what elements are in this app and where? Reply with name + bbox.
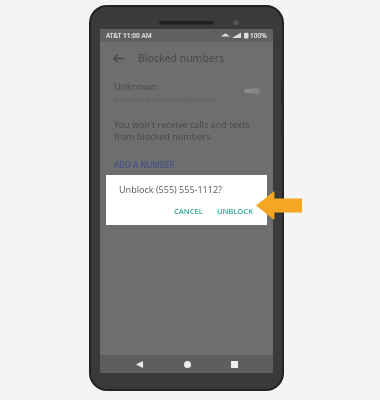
button[interactable]: Home	[178, 355, 196, 373]
button[interactable]: UNBLOCK	[212, 203, 258, 219]
button[interactable]: Unknown	[100, 74, 273, 108]
staticText: AT&T 11:00 AM	[106, 31, 152, 40]
staticText: CANCEL	[174, 206, 203, 216]
staticText: ADD A NUMBER	[114, 159, 175, 170]
button[interactable]: Back	[130, 355, 148, 373]
staticText: You won't receive calls and texts from b…	[114, 118, 259, 143]
staticText: Blocked numbers	[138, 51, 225, 65]
staticText: Block calls from unidentified callers	[114, 95, 217, 103]
button[interactable]: Recent apps	[225, 355, 243, 373]
other: Pointer arrow to Unblock	[256, 191, 302, 220]
staticText: Unknown	[114, 80, 157, 93]
staticText: UNBLOCK	[217, 206, 253, 216]
staticText: 100%	[250, 31, 267, 40]
button[interactable]: Back	[108, 48, 128, 68]
button[interactable]: CANCEL	[169, 203, 208, 219]
button[interactable]: ADD A NUMBER	[100, 157, 189, 172]
staticText: Unblock (555) 555-1112?	[119, 183, 222, 195]
